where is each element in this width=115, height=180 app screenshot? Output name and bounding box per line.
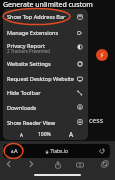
staticText: A [14, 147, 18, 155]
staticText: Request Desktop Website [7, 75, 75, 83]
button[interactable] [3, 39, 88, 56]
staticText: Show Top Address Bar [7, 13, 66, 21]
button[interactable]: Bookmarks [73, 158, 87, 172]
staticText: A [20, 132, 23, 138]
staticText: Show Reader View [7, 119, 56, 127]
button[interactable]: 7labs.io [3, 144, 110, 158]
staticText: 2 Trackers Prevented [7, 48, 51, 54]
button[interactable] [3, 115, 88, 130]
button[interactable]: Back [2, 157, 16, 171]
button[interactable] [3, 71, 88, 86]
staticText: Website Settings [7, 60, 51, 68]
button[interactable]: Forward [24, 157, 38, 171]
staticText: cess [89, 116, 104, 126]
staticText: Downloads [7, 104, 37, 112]
button[interactable] [3, 86, 88, 100]
button[interactable]: Reload [97, 146, 106, 155]
staticText: A [11, 149, 14, 155]
button[interactable] [3, 56, 88, 71]
button[interactable] [3, 129, 88, 140]
button[interactable] [3, 25, 88, 40]
button[interactable] [3, 100, 88, 115]
button[interactable] [3, 9, 88, 25]
staticText: A [69, 130, 74, 139]
button[interactable]: Share [51, 158, 65, 172]
staticText: 100% [38, 131, 51, 138]
button[interactable]: Tabs [98, 157, 112, 171]
staticText: Manage Extensions [7, 29, 59, 37]
staticText: 7labs.io [50, 148, 69, 155]
staticText: Privacy Report [7, 42, 45, 50]
button[interactable]: Text size [8, 145, 20, 157]
staticText: Generate unlimited custom [3, 0, 93, 10]
staticText: Hide Toolbar [7, 89, 41, 97]
